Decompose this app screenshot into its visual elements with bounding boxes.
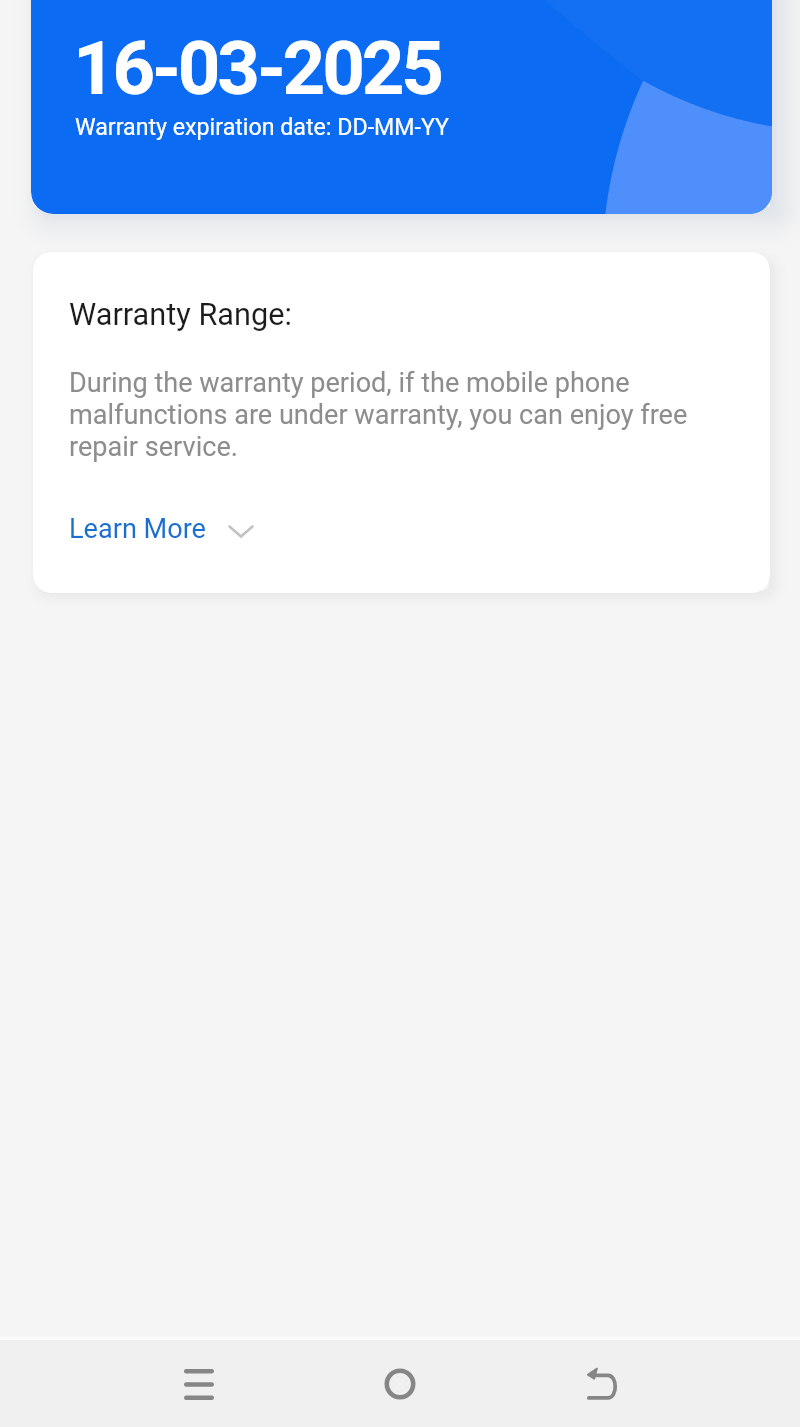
button[interactable]: Home [360, 1344, 440, 1424]
staticText: 16-03-2025 [73, 25, 441, 112]
staticText: Learn More [69, 513, 206, 545]
staticText: During the warranty period, if the mobil… [69, 367, 709, 463]
staticText: Warranty expiration date: DD-MM-YY [75, 113, 450, 140]
staticText: Warranty Range: [69, 297, 292, 333]
button[interactable]: Back [562, 1344, 642, 1424]
button[interactable]: Recent apps [159, 1344, 239, 1424]
button[interactable]: Learn More [69, 510, 254, 542]
